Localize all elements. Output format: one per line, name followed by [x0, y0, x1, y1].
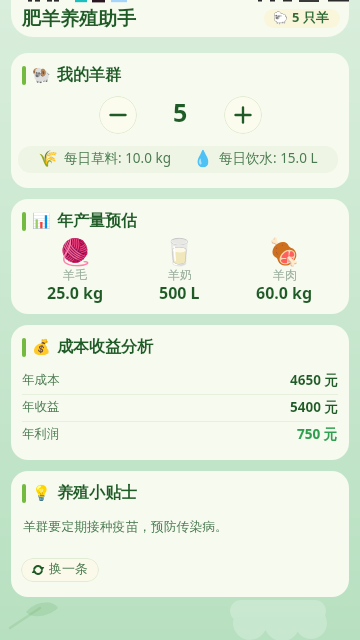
staticText: 每日饮水: 15.0 L [219, 152, 318, 167]
staticText: 5400 元 [290, 401, 338, 416]
staticText: 换一条 [49, 563, 88, 577]
staticText: 成本收益分析 [57, 337, 153, 357]
button[interactable]: Decrease count [99, 96, 137, 134]
staticText: 💡 [32, 484, 51, 502]
staticText: 每日草料: 10.0 kg [64, 152, 171, 167]
staticText: 25.0 kg [47, 286, 104, 303]
button[interactable]: 🐑 [264, 9, 340, 28]
staticText: 年收益 [22, 401, 60, 415]
staticText: 500 L [159, 286, 200, 303]
staticText: 🥛 [163, 239, 196, 267]
staticText: 养殖小贴士 [57, 483, 137, 503]
staticText: 年成本 [22, 374, 60, 388]
staticText: 🧶 [59, 239, 92, 267]
staticText: 肥羊养殖助手 [22, 9, 136, 30]
staticText: 我的羊群 [57, 65, 121, 85]
staticText: 年利润 [22, 428, 60, 442]
staticText: 5 [173, 102, 188, 128]
staticText: 🌾 [38, 151, 58, 168]
staticText: 羊肉 [273, 269, 297, 282]
staticText: 🐑 [273, 12, 288, 25]
staticText: 60.0 kg [256, 286, 313, 303]
staticText: 年产量预估 [57, 211, 137, 231]
staticText: 羊毛 [63, 269, 87, 282]
staticText: 羊奶 [168, 269, 192, 282]
staticText: 羊群要定期接种疫苗，预防传染病。 [23, 521, 228, 535]
staticText: 5 只羊 [292, 11, 329, 26]
staticText: 🐏 [32, 66, 51, 84]
button[interactable]: 换一条 [21, 558, 99, 582]
staticText: 📊 [32, 212, 51, 230]
staticText: 🍖 [268, 239, 301, 267]
staticText: 💰 [32, 338, 51, 356]
button[interactable]: Increase count [224, 96, 262, 134]
staticText: 750 元 [297, 428, 338, 443]
staticText: 4650 元 [290, 374, 338, 389]
staticText: 💧 [193, 151, 213, 168]
